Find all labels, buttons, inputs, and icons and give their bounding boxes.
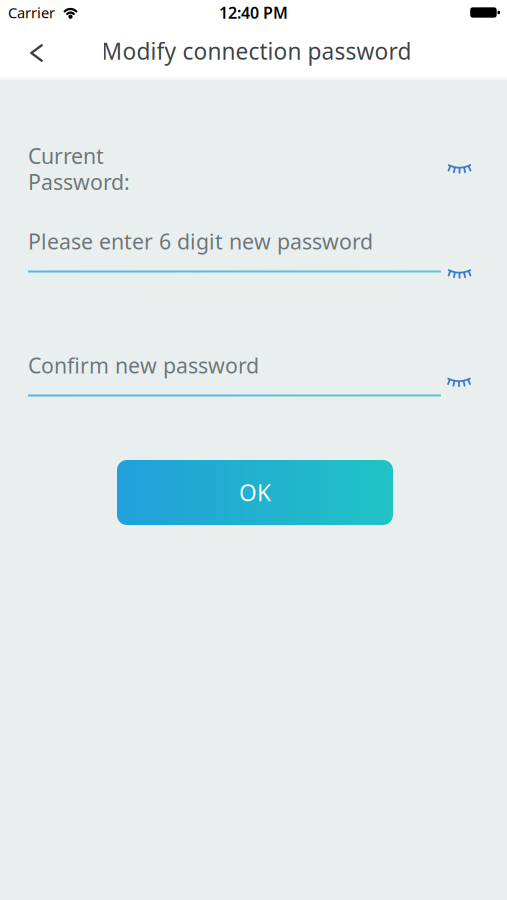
staticText: Modify connection password xyxy=(101,36,411,66)
staticText: Password: xyxy=(28,167,130,196)
button[interactable]: Show confirmed password xyxy=(447,377,471,390)
staticText: OK xyxy=(239,477,271,507)
button[interactable]: Show new password xyxy=(447,268,471,281)
staticText: Please enter 6 digit new password xyxy=(28,227,373,255)
button[interactable]: Back xyxy=(0,34,55,72)
button[interactable]: Please enter 6 digit new password xyxy=(28,227,441,273)
button[interactable]: OK xyxy=(117,460,393,525)
staticText: 12:40 PM xyxy=(219,2,288,23)
staticText: Carrier xyxy=(8,3,55,22)
button[interactable]: Current xyxy=(28,141,138,191)
staticText: Current xyxy=(28,141,104,170)
button[interactable]: Show current password xyxy=(447,163,471,176)
button[interactable]: Confirm new password xyxy=(28,351,441,397)
staticText: Confirm new password xyxy=(28,351,259,379)
